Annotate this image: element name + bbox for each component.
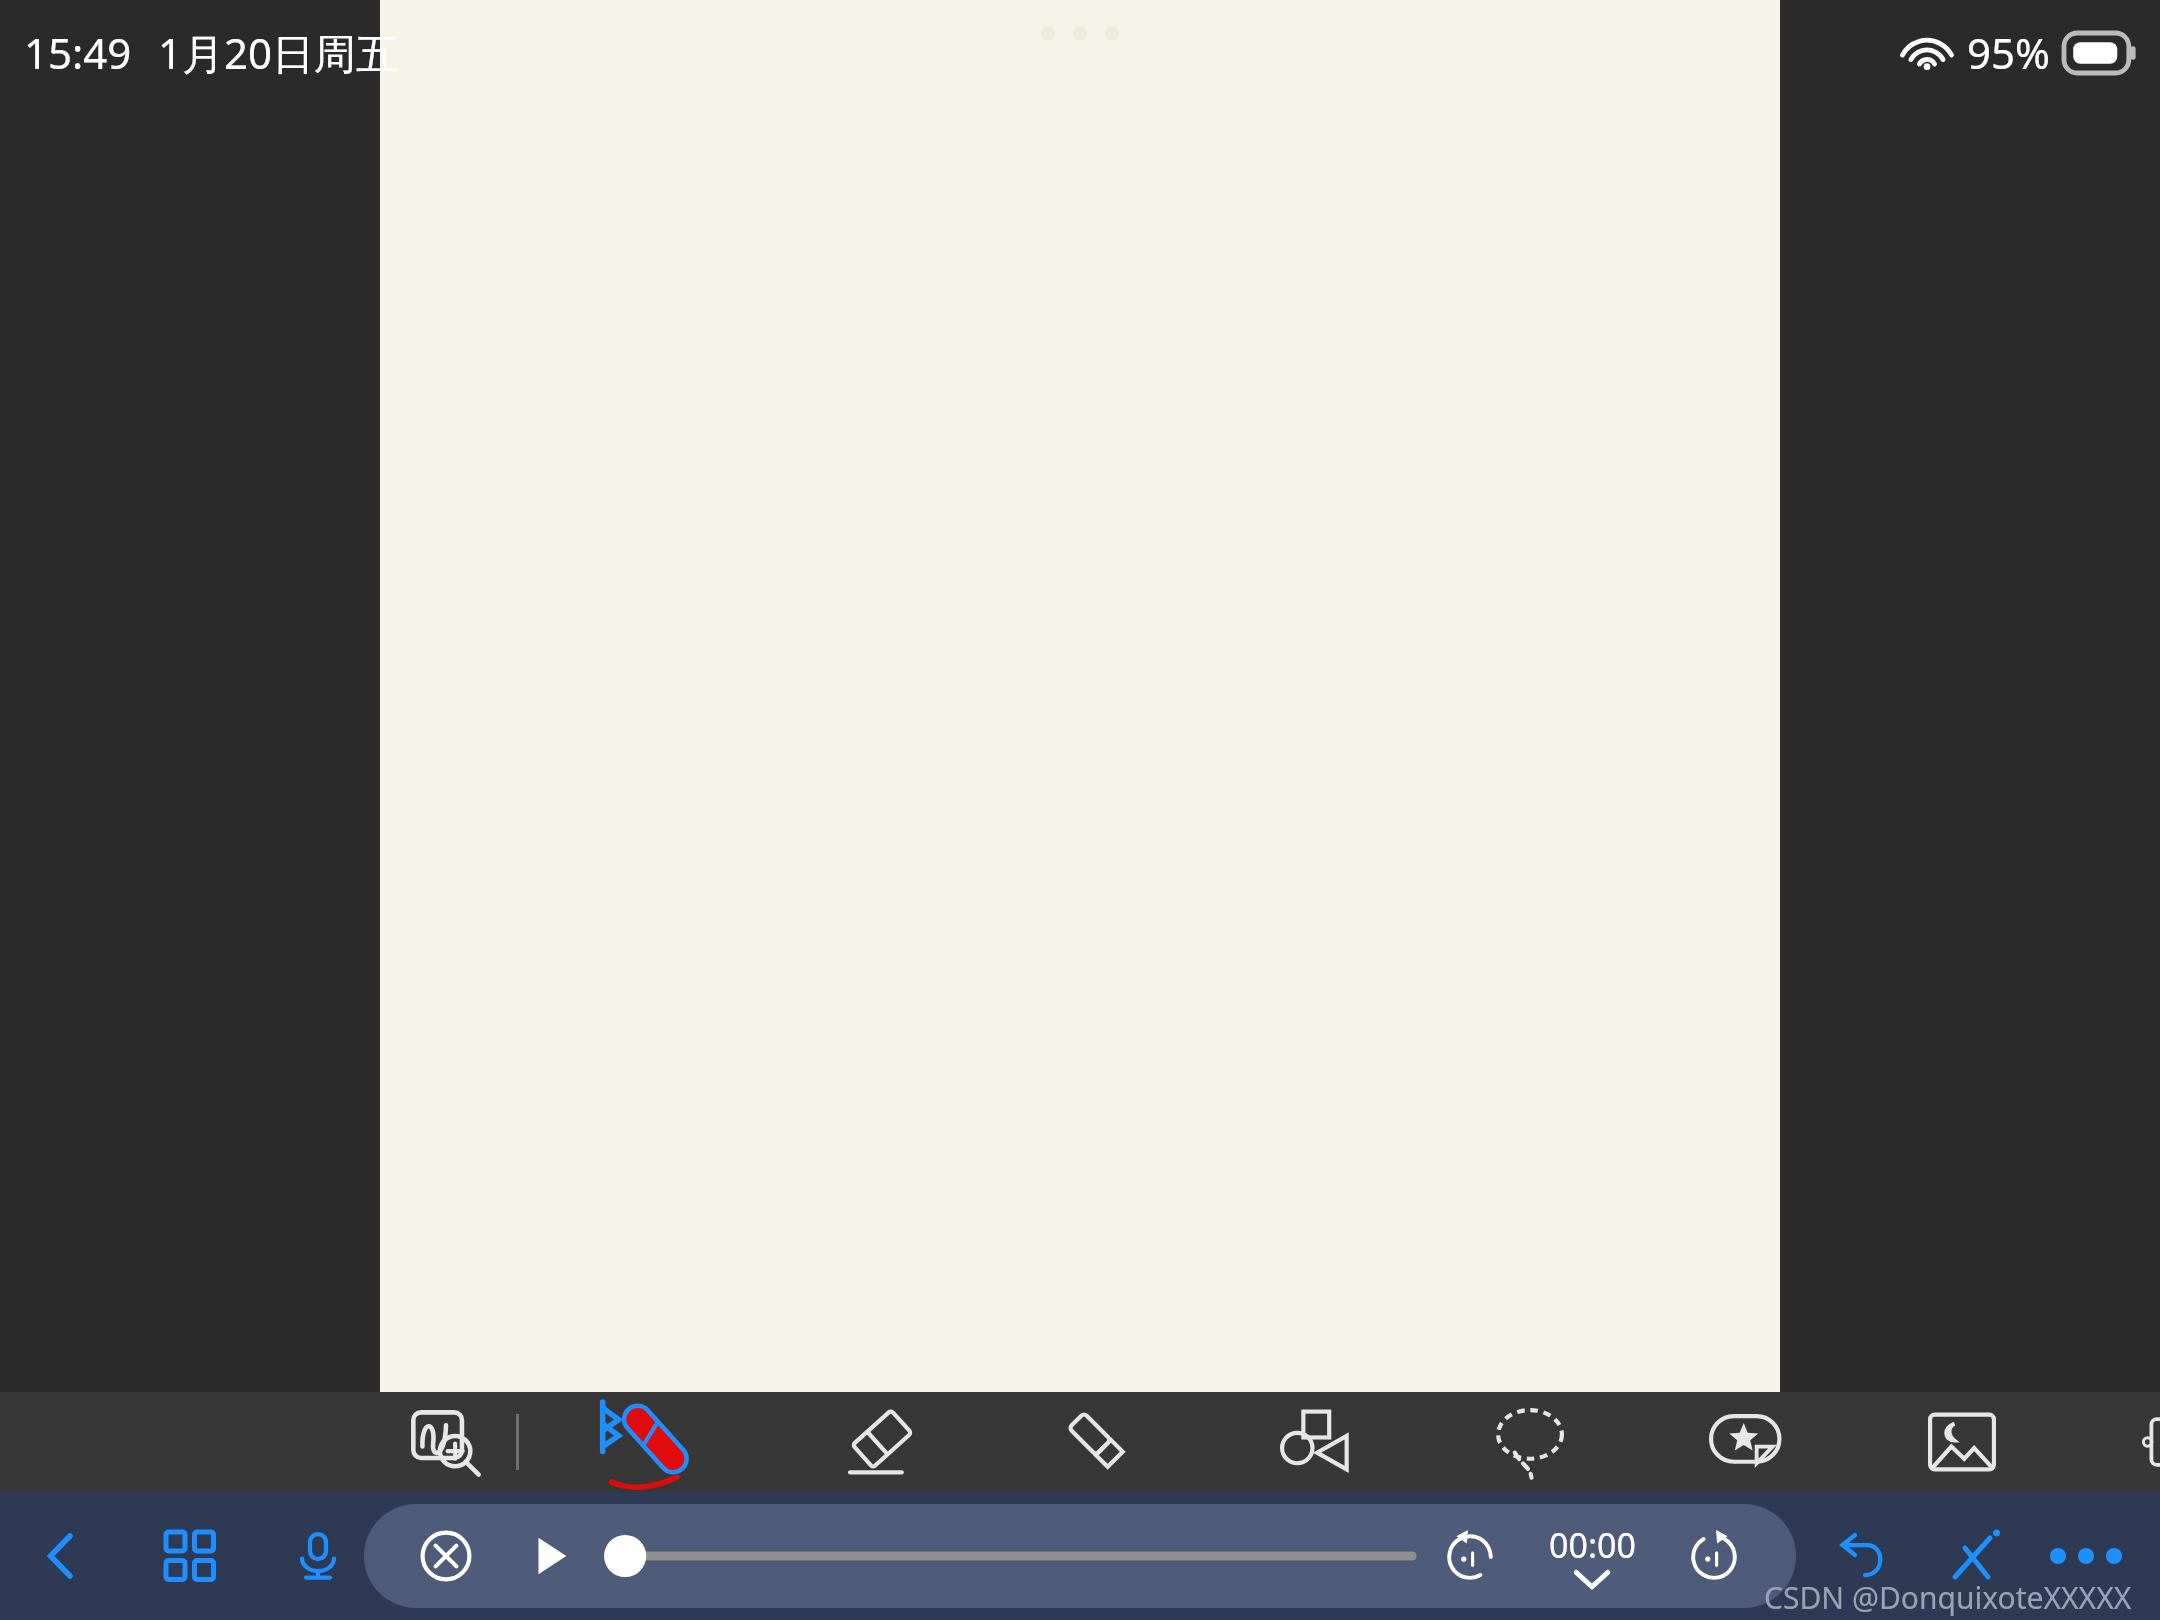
button[interactable]: Shapes [1248,1392,1380,1492]
button[interactable]: Rewind 10 seconds [1432,1518,1508,1594]
button[interactable]: Insert space [380,1392,512,1492]
staticText: 95% [1967,24,2050,81]
staticText: 1月20日周五 [158,24,399,81]
button[interactable]: Undo [1816,1510,1908,1602]
button[interactable]: Voice input [272,1510,364,1602]
button[interactable]: Playback position [604,1504,1412,1608]
staticText: 00:00 [1549,1522,1636,1568]
button[interactable]: 00:00 [1524,1522,1660,1590]
staticText: CSDN @DonquixoteXXXXX [1764,1577,2132,1618]
button[interactable]: Close recorder [408,1518,484,1594]
button[interactable]: Bluetooth pen [568,1392,724,1492]
button[interactable]: Eraser [816,1392,948,1492]
button[interactable]: Sticker [1680,1392,1812,1492]
button[interactable]: More options [2040,1510,2132,1602]
staticText: 15:49 [24,24,132,81]
button[interactable]: Back [16,1510,108,1602]
button[interactable]: Lasso select [1464,1392,1596,1492]
button[interactable]: Play [512,1518,588,1594]
button[interactable]: Text box [2112,1392,2160,1492]
button[interactable]: Clear page [1928,1510,2020,1602]
button[interactable]: Forward 10 seconds [1676,1518,1752,1594]
button[interactable]: Highlighter [1032,1392,1164,1492]
button[interactable]: Insert image [1896,1392,2028,1492]
button[interactable]: Apps [144,1510,236,1602]
